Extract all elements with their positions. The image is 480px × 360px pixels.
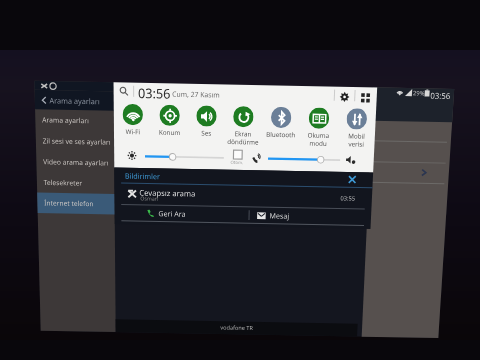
staticText: Arama ayarları (42, 115, 90, 126)
button[interactable]: Arama ayarları (35, 90, 114, 111)
button[interactable]: Ringtone volume (250, 151, 262, 164)
staticText: Ekran döndürme (227, 129, 259, 147)
button[interactable]: Otom. (230, 150, 244, 165)
button[interactable]: Mobil verisi (337, 104, 376, 149)
button[interactable]: Wi-Fi (114, 99, 151, 144)
button[interactable]: Mesaj (249, 207, 354, 225)
button[interactable]: İnternet telefon görüşmesi (37, 193, 115, 214)
staticText: İnternet telefon görüşmesi (44, 198, 121, 210)
button[interactable]: Settings (336, 89, 353, 105)
staticText: Cevapsız arama (139, 187, 196, 198)
button[interactable]: Ses (187, 101, 225, 146)
button[interactable]: Clear all notifications (346, 173, 359, 186)
staticText: Cum, 27 Kasım (172, 89, 220, 101)
button[interactable]: Video arama ayarları (36, 151, 114, 173)
staticText: vodafone TR (220, 324, 254, 332)
button[interactable]: Okuma modu (299, 103, 338, 148)
staticText: Osman (140, 194, 158, 202)
button[interactable] (145, 150, 224, 164)
button[interactable]: Arama ayarları (35, 109, 114, 132)
staticText: Okuma modu (307, 131, 330, 148)
button[interactable] (268, 153, 340, 166)
staticText: Bluetooth (266, 130, 296, 139)
button[interactable]: Telesekreter (37, 172, 114, 194)
staticText: Otom. (230, 159, 244, 165)
staticText: 03:56 (138, 84, 171, 102)
staticText: Konum (158, 128, 181, 137)
button[interactable]: Zil sesi ve ses ayarları (36, 130, 114, 153)
button[interactable]: Cevapsız arama (114, 183, 372, 209)
staticText: Zil sesi ve ses ayarları (42, 136, 111, 148)
staticText: Arama ayarları (49, 95, 100, 106)
staticText: Telesekreter (43, 178, 83, 188)
staticText: Mesaj (269, 211, 290, 221)
button[interactable]: Bluetooth (262, 102, 301, 147)
button[interactable]: Brightness (126, 149, 138, 162)
staticText: Bildirimler (125, 171, 160, 181)
button[interactable]: Sound settings (345, 153, 358, 166)
staticText: Wi-Fi (126, 127, 140, 136)
staticText: 03:56 (430, 89, 451, 101)
staticText: Ses (201, 128, 212, 138)
staticText: 29% (413, 89, 425, 97)
button[interactable]: Konum (151, 100, 188, 145)
button[interactable]: Edit quick settings (357, 89, 373, 106)
staticText: Video arama ayarları (43, 157, 108, 168)
staticText: Geri Ara (158, 208, 186, 219)
staticText: Mobil verisi (347, 131, 365, 149)
button[interactable]: Ekran döndürme (224, 102, 263, 147)
button[interactable]: Geri Ara (128, 205, 246, 223)
staticText: 03:55 (340, 194, 356, 203)
button[interactable]: Search (117, 84, 130, 98)
